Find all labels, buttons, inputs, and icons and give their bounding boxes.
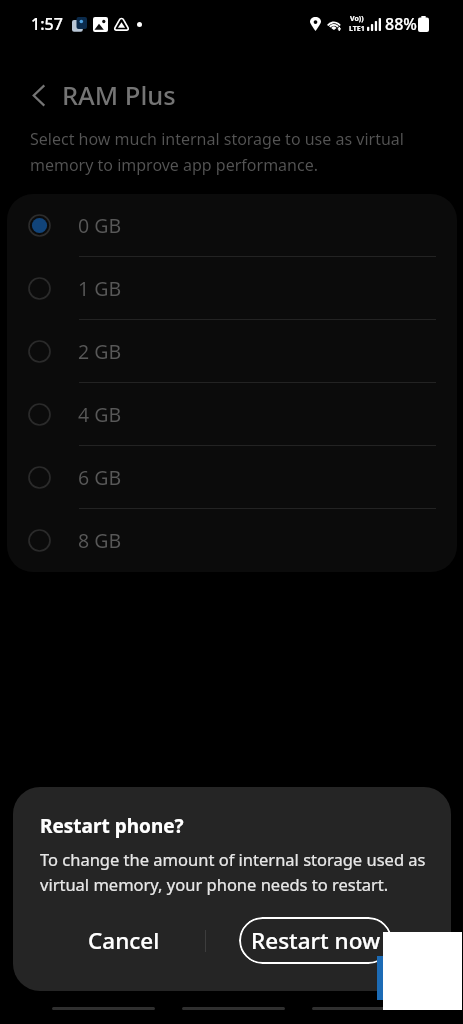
button[interactable]: 8 GB [7, 509, 457, 572]
button[interactable]: 6 GB [7, 446, 457, 509]
staticText: To change the amount of internal storage… [40, 848, 426, 896]
staticText: 6 GB [78, 464, 122, 491]
staticText: Select how much internal storage to use … [30, 128, 423, 176]
staticText: 1 GB [78, 275, 122, 302]
button[interactable]: 2 GB [7, 320, 457, 383]
staticText: 8 GB [78, 527, 122, 554]
staticText: Restart phone? [40, 813, 184, 839]
staticText: Cancel [88, 925, 160, 956]
staticText: 88% [385, 13, 417, 35]
staticText: 1:57 [31, 13, 63, 35]
staticText: 0 GB [78, 212, 122, 239]
staticText: LTE1 [349, 24, 365, 34]
button[interactable]: 0 GB [7, 194, 457, 257]
button[interactable]: Back [22, 78, 56, 112]
button[interactable]: 4 GB [7, 383, 457, 446]
button[interactable]: 1 GB [7, 257, 457, 320]
button[interactable]: Restart now [239, 917, 392, 964]
staticText: 4 GB [78, 401, 122, 428]
staticText: 2 GB [78, 338, 122, 365]
staticText: RAM Plus [62, 78, 176, 113]
staticText: Restart now [251, 925, 381, 956]
button[interactable]: Cancel [54, 917, 194, 964]
staticText: Vo)) [350, 14, 364, 24]
